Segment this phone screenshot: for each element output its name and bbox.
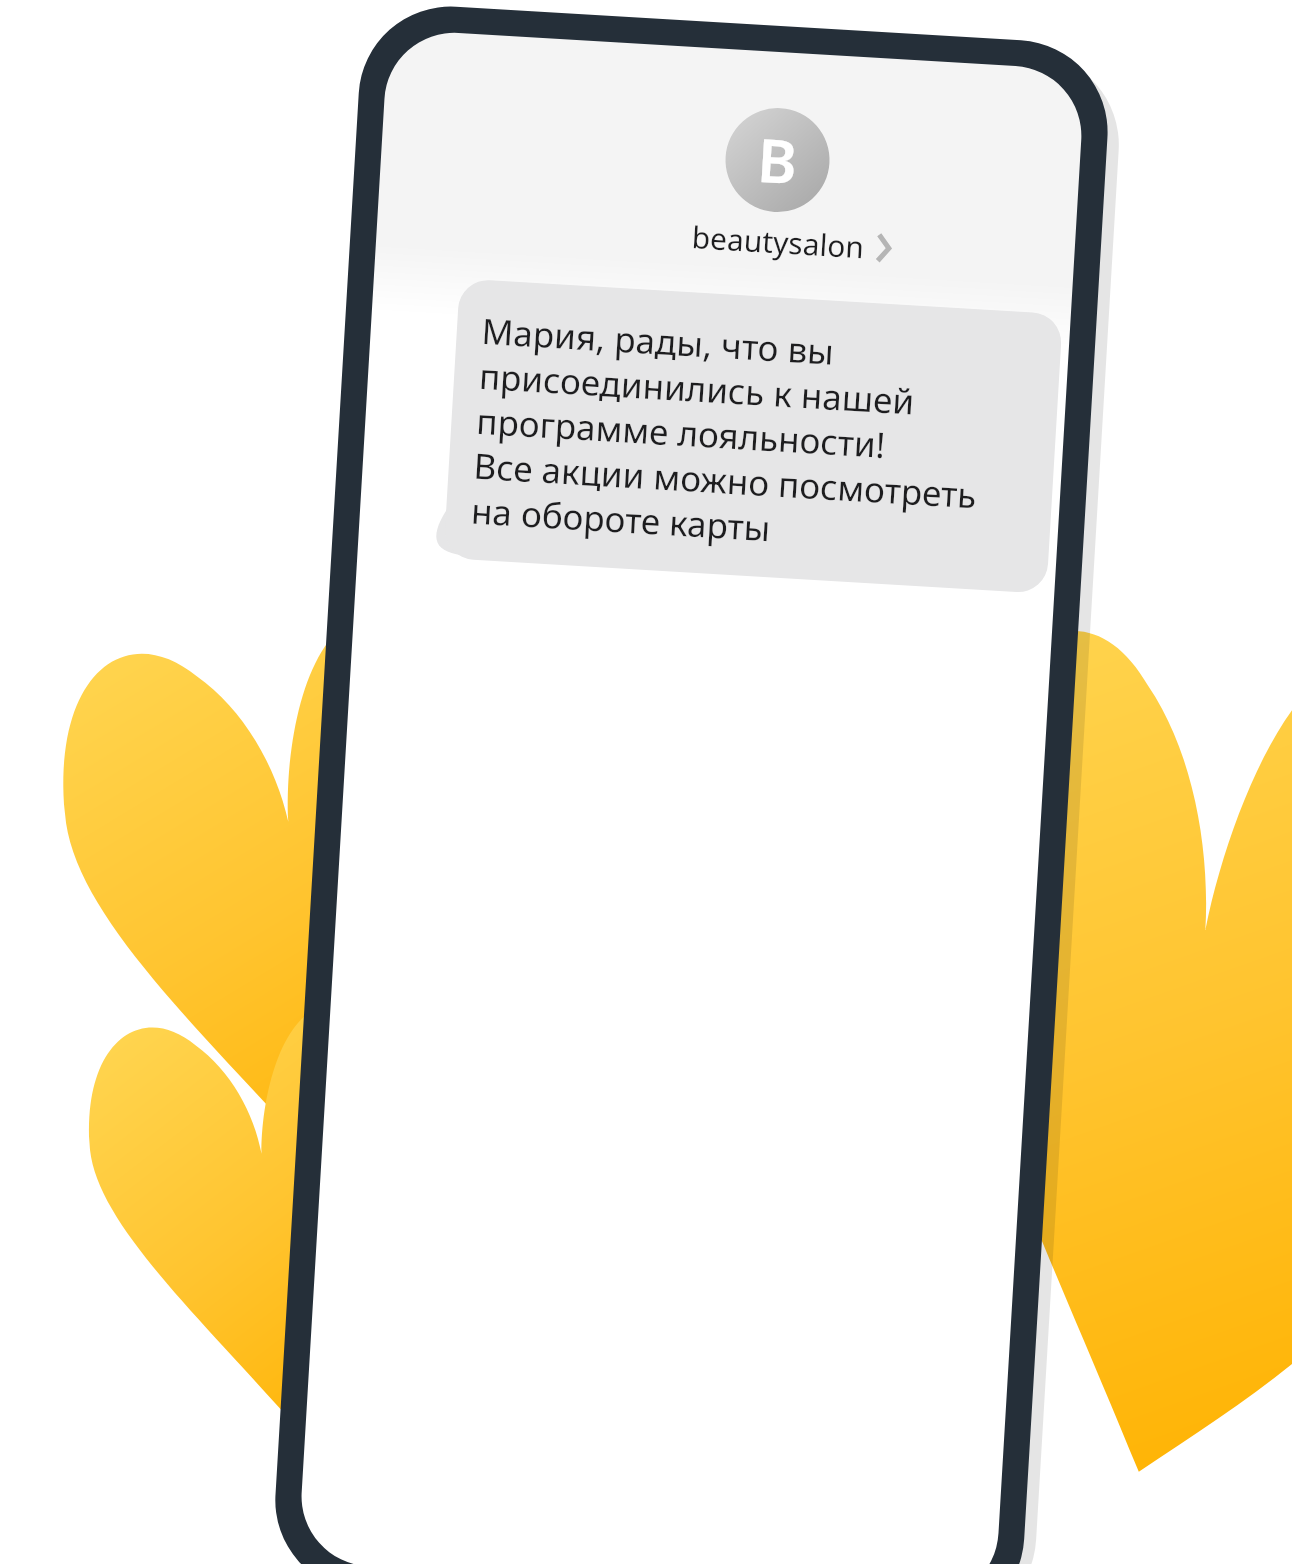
button[interactable]: beautysalon loyalty message <box>0 0 1292 1564</box>
